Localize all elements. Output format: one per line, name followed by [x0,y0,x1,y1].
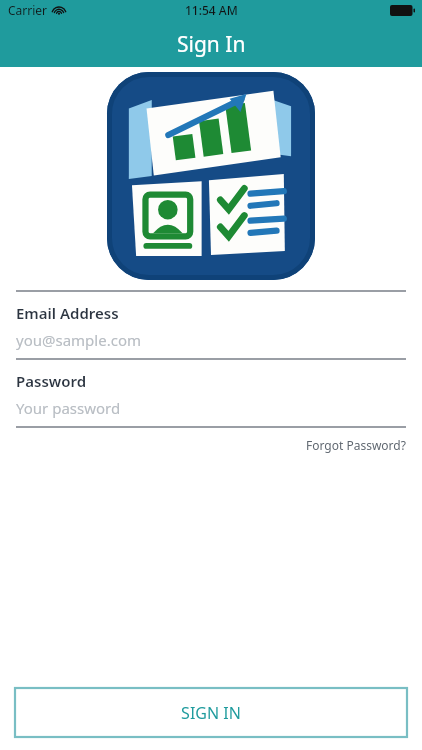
staticText: Carrier [8,2,48,18]
staticText: Forgot Password? [306,437,406,453]
staticText: SIGN IN [181,702,241,724]
staticText: you@sample.com [16,330,141,350]
staticText: 11:54 AM [185,2,238,18]
staticText: Sign In [177,30,246,59]
staticText: Email Address [16,303,119,323]
button[interactable]: Email Address [0,292,422,358]
button[interactable]: SIGN IN [15,688,407,737]
button[interactable]: Forgot Password? [306,437,406,453]
button[interactable]: Password [0,360,422,426]
staticText: Your password [16,398,121,418]
staticText: Password [16,371,87,391]
